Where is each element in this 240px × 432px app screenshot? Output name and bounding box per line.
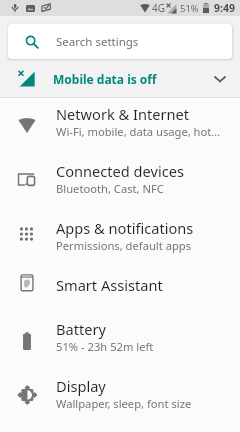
staticText: Smart Assistant	[56, 275, 163, 295]
staticText: Mobile data is off	[53, 71, 157, 87]
button[interactable]: Network & Internet	[0, 98, 240, 155]
button[interactable]: Mobile data is off	[0, 60, 240, 97]
staticText: Battery	[56, 319, 106, 339]
staticText: 9:49	[214, 1, 235, 15]
staticText: Bluetooth, Cast, NFC	[56, 181, 164, 196]
staticText: 51%	[180, 2, 199, 15]
button[interactable]: Display	[0, 370, 240, 432]
button[interactable]: Search settings	[8, 24, 232, 59]
button[interactable]: Apps & notifications	[0, 212, 240, 269]
button[interactable]: Battery	[0, 313, 240, 370]
staticText: Wi-Fi, mobile, data usage, hot…	[56, 124, 221, 139]
staticText: Network & Internet	[56, 104, 189, 124]
button[interactable]: Smart Assistant	[0, 269, 240, 313]
staticText: Connected devices	[56, 161, 184, 181]
staticText: Apps & notifications	[56, 218, 194, 238]
button[interactable]: Connected devices	[0, 155, 240, 212]
staticText: Permissions, default apps	[56, 238, 192, 253]
staticText: Display	[56, 376, 106, 396]
staticText: 51% - 23h 52m left	[56, 339, 154, 354]
staticText: Wallpaper, sleep, font size	[56, 396, 192, 411]
staticText: Search settings	[56, 34, 139, 50]
staticText: 4G	[152, 1, 165, 15]
